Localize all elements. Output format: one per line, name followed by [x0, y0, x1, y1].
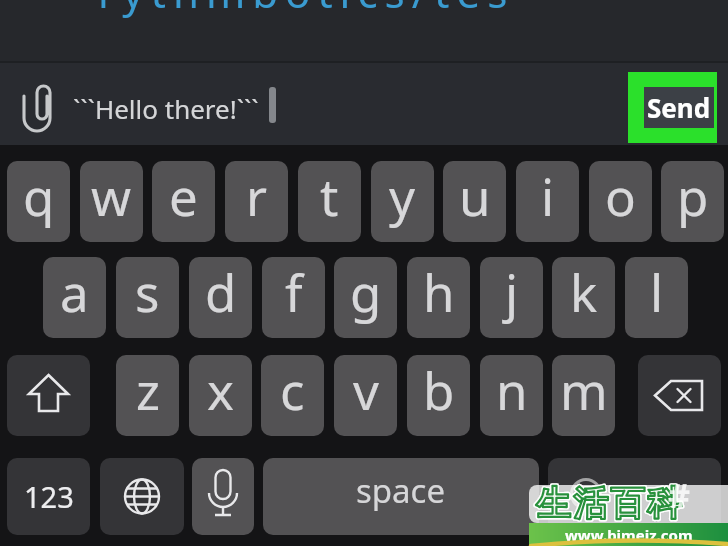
button[interactable]: w	[80, 161, 143, 242]
button[interactable]: h	[407, 257, 470, 338]
button[interactable]: s	[116, 257, 179, 338]
staticText: k	[570, 257, 598, 326]
button[interactable]: d	[189, 257, 252, 338]
staticText: #	[668, 472, 690, 518]
button[interactable]: j	[480, 257, 543, 338]
button[interactable]	[192, 458, 254, 535]
staticText: space	[356, 468, 446, 513]
button[interactable]: u	[443, 161, 506, 242]
staticText: c	[280, 355, 305, 424]
staticText: o	[605, 161, 636, 230]
staticText: x	[207, 355, 234, 424]
staticText: t	[320, 161, 339, 230]
staticText: 生活百科	[535, 482, 683, 525]
staticText: f	[285, 257, 303, 326]
button[interactable]	[100, 458, 184, 535]
staticText: n	[496, 355, 528, 424]
staticText: 生活百科	[535, 482, 683, 525]
staticText: 生活百科	[535, 482, 683, 525]
staticText: u	[459, 161, 491, 230]
staticText: d	[205, 257, 237, 326]
button[interactable]: f	[262, 257, 325, 338]
button[interactable]: g	[334, 257, 397, 338]
button[interactable]	[16, 81, 58, 135]
staticText: a	[60, 257, 89, 326]
button[interactable]: i	[516, 161, 579, 242]
button[interactable]: a	[43, 257, 106, 338]
button[interactable]: l	[625, 257, 688, 338]
button[interactable]: p	[661, 161, 724, 242]
staticText: rythmbotics/tes	[98, 0, 515, 20]
button[interactable]: t	[298, 161, 361, 242]
staticText: l	[650, 257, 664, 326]
staticText: w	[91, 161, 132, 230]
button[interactable]: z	[116, 355, 179, 436]
staticText: www.bimeiz.com	[565, 525, 693, 545]
button[interactable]: x	[189, 355, 252, 436]
staticText: p	[677, 161, 709, 230]
staticText: h	[423, 257, 455, 326]
staticText: r	[246, 161, 268, 230]
button[interactable]	[7, 355, 90, 436]
button[interactable]: v	[334, 355, 397, 436]
button[interactable]: m	[552, 355, 615, 436]
staticText: Send	[647, 90, 711, 125]
button[interactable]: y	[371, 161, 434, 242]
button[interactable]: r	[225, 161, 288, 242]
button[interactable]	[638, 355, 721, 436]
button[interactable]: k	[552, 257, 615, 338]
button[interactable]: n	[480, 355, 543, 436]
staticText: i	[541, 161, 555, 230]
button[interactable]: b	[407, 355, 470, 436]
button[interactable]: q	[7, 161, 70, 242]
button[interactable]	[548, 458, 721, 535]
button[interactable]: c	[261, 355, 324, 436]
staticText: m	[560, 355, 608, 424]
button[interactable]: e	[152, 161, 215, 242]
button[interactable]: 123	[7, 458, 90, 535]
button[interactable]: space	[263, 458, 539, 535]
staticText: y	[389, 161, 416, 230]
staticText: z	[136, 355, 160, 424]
staticText: b	[423, 355, 455, 424]
button[interactable]: o	[589, 161, 652, 242]
staticText: 123	[24, 477, 74, 516]
staticText: g	[350, 257, 382, 326]
staticText: ```Hello there!```	[73, 91, 259, 126]
staticText: s	[135, 257, 160, 326]
staticText: q	[23, 161, 55, 230]
staticText: e	[169, 161, 198, 230]
staticText: j	[505, 257, 519, 326]
staticText: v	[353, 355, 379, 424]
button[interactable]	[0, 63, 728, 145]
button[interactable]: Send	[644, 87, 714, 128]
